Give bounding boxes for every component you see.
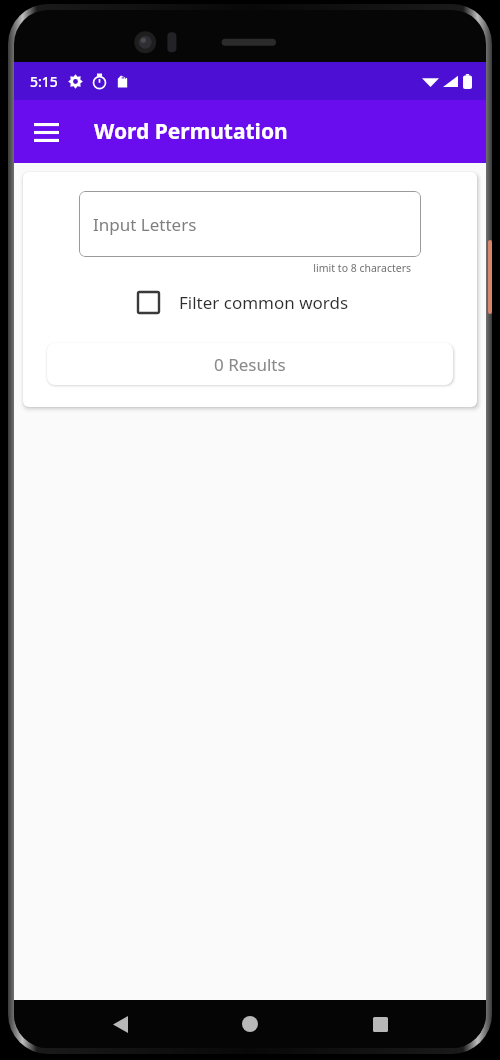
staticText: Input Letters: [93, 213, 197, 236]
button[interactable]: 0 Results: [47, 343, 453, 385]
button[interactable]: Filter common words: [135, 289, 349, 315]
button[interactable]: Back: [96, 1000, 144, 1048]
staticText: Filter common words: [179, 291, 349, 314]
staticText: 0 Results: [214, 353, 286, 376]
staticText: 5:15: [30, 72, 58, 91]
staticText: Word Permutation: [94, 117, 288, 146]
staticText: limit to 8 characters: [23, 261, 411, 275]
button[interactable]: Recent apps: [356, 1000, 404, 1048]
button[interactable]: Open navigation menu: [22, 108, 70, 156]
button[interactable]: Home: [226, 1000, 274, 1048]
button[interactable]: Input Letters: [79, 191, 421, 257]
